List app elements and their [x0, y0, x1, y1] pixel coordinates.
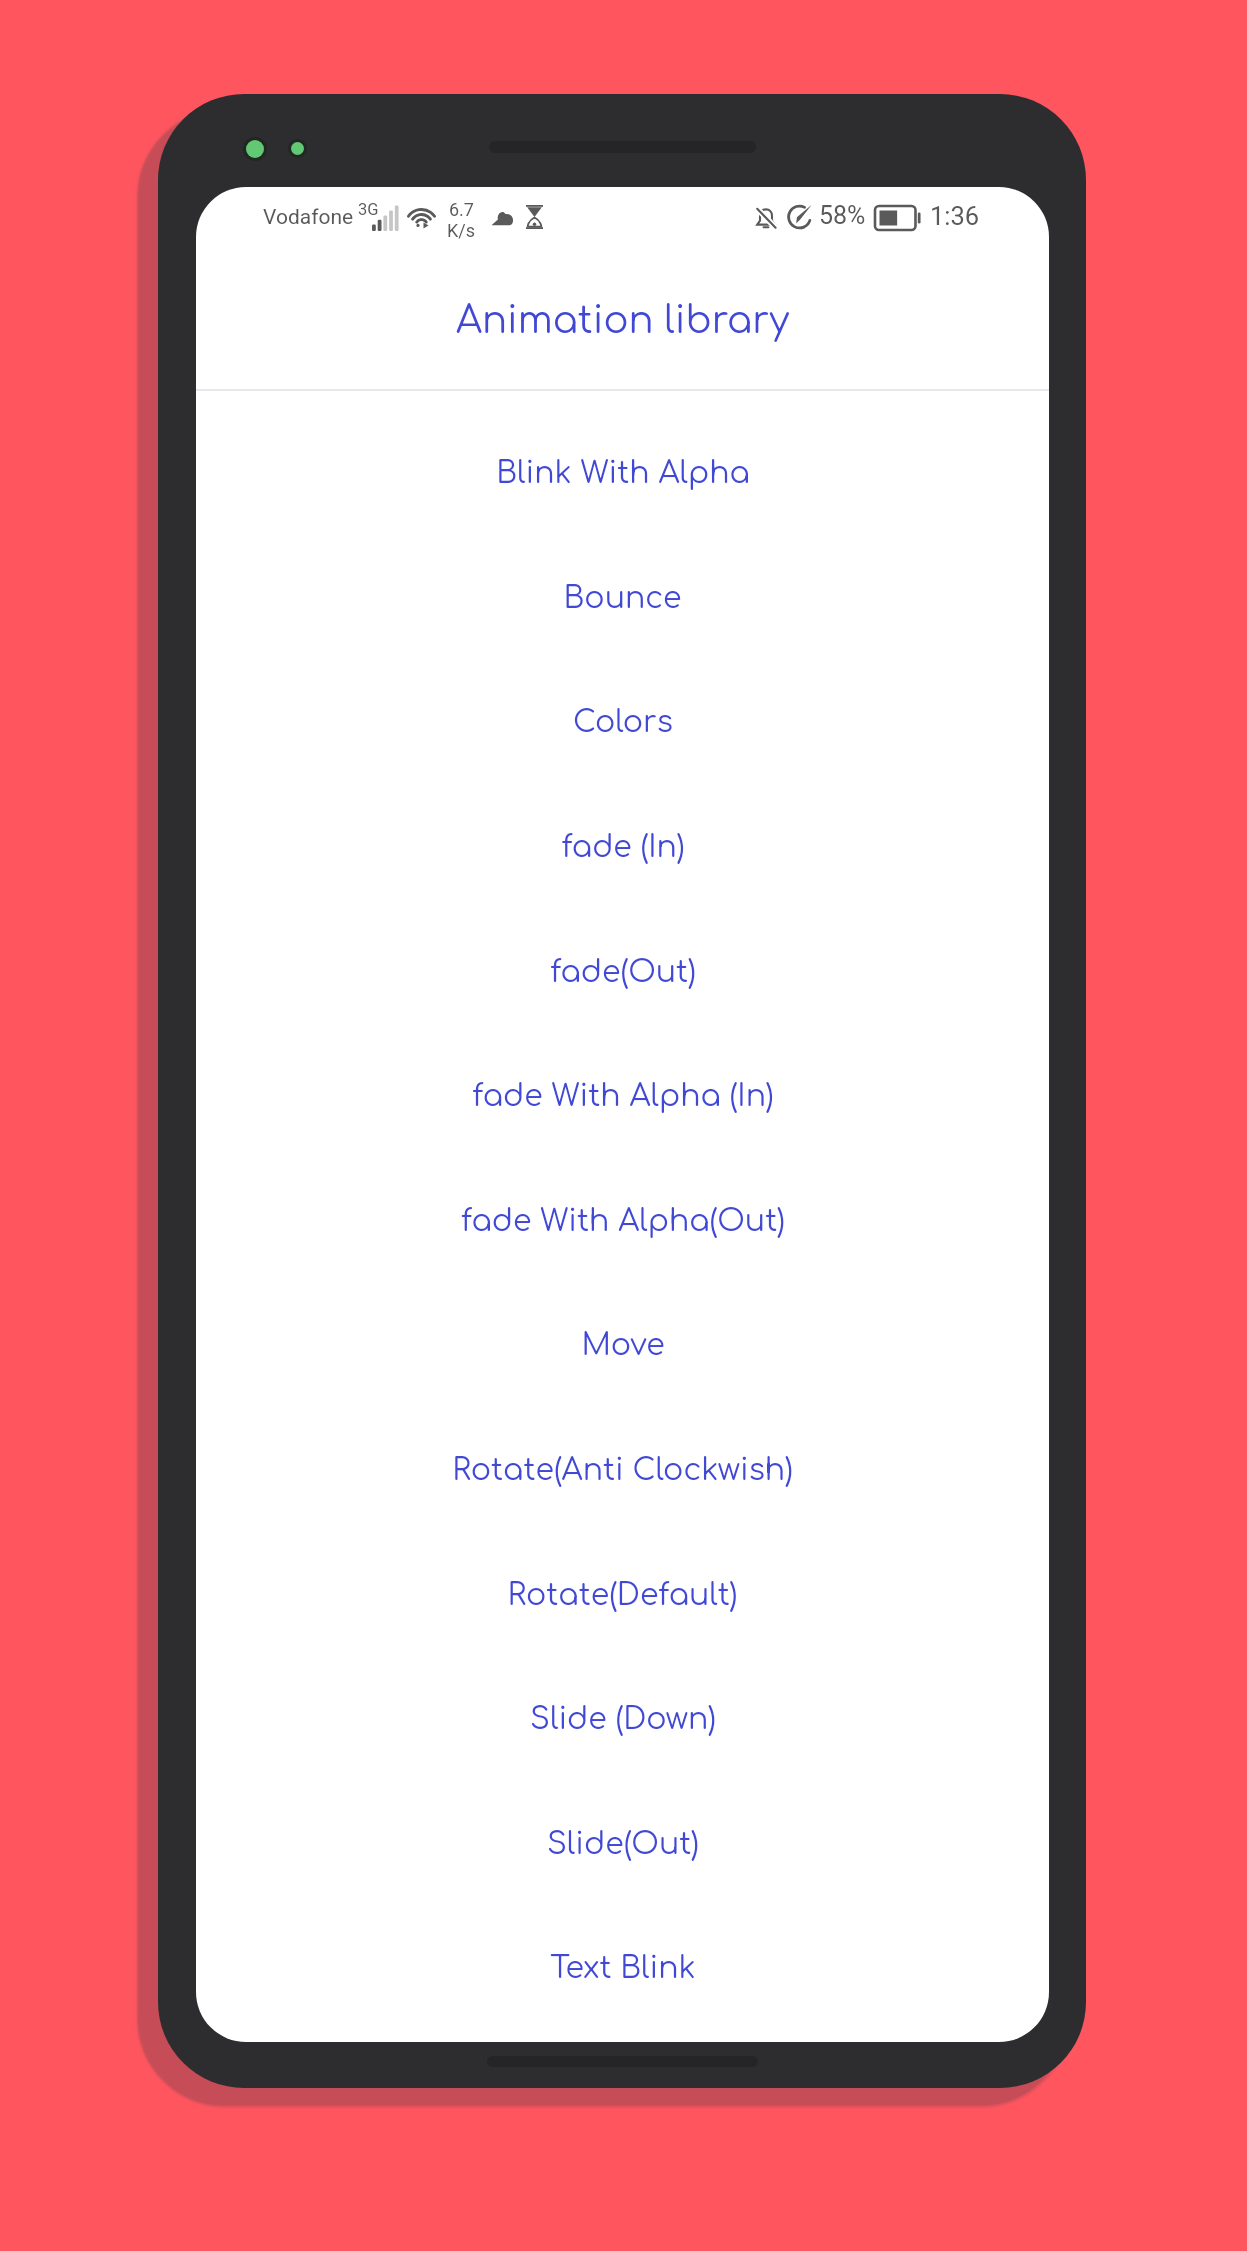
button[interactable]: Slide(Out) — [196, 1782, 1049, 1907]
staticText: Vodafone — [263, 205, 354, 230]
staticText: Rotate(Default) — [507, 1579, 738, 1612]
staticText: Move — [581, 1329, 665, 1362]
other: Wi-Fi — [407, 203, 436, 231]
button[interactable]: fade (In) — [196, 785, 1049, 910]
staticText: fade(Out) — [550, 956, 696, 989]
button[interactable]: fade With Alpha (In) — [196, 1034, 1049, 1159]
staticText: Blink With Alpha — [496, 457, 750, 490]
other: Notifications silenced — [756, 207, 776, 229]
other: Battery 58 percent — [875, 206, 921, 230]
staticText: K/s — [447, 220, 476, 241]
staticText: Slide (Down) — [530, 1703, 716, 1736]
staticText: 3G — [358, 200, 379, 219]
staticText: 58% — [819, 201, 866, 230]
other: Mobile signal strength — [372, 205, 398, 231]
button[interactable]: Blink With Alpha — [196, 411, 1049, 536]
staticText: 6.7 — [449, 199, 474, 220]
staticText: 1:36 — [930, 201, 980, 231]
button[interactable]: Colors — [196, 660, 1049, 785]
other: Cloud sync — [491, 209, 514, 226]
other: Alarm set — [526, 205, 543, 229]
staticText: fade With Alpha(Out) — [461, 1205, 785, 1238]
staticText: Bounce — [563, 582, 682, 615]
staticText: Slide(Out) — [547, 1828, 699, 1861]
button[interactable]: Move — [196, 1283, 1049, 1408]
button[interactable]: Rotate(Anti Clockwish) — [196, 1408, 1049, 1533]
staticText: Colors — [573, 706, 673, 739]
button[interactable]: Bounce — [196, 536, 1049, 661]
button[interactable]: fade With Alpha(Out) — [196, 1159, 1049, 1284]
staticText: fade With Alpha (In) — [472, 1080, 774, 1113]
staticText: fade (In) — [561, 831, 685, 864]
button[interactable]: Text Blink — [196, 1906, 1049, 2031]
button[interactable]: Slide (Down) — [196, 1657, 1049, 1782]
button[interactable]: Rotate(Default) — [196, 1533, 1049, 1658]
staticText: Animation library — [456, 300, 790, 341]
staticText: Rotate(Anti Clockwish) — [452, 1454, 793, 1487]
other: Data saver — [785, 204, 814, 230]
staticText: Text Blink — [550, 1952, 696, 1985]
button[interactable]: fade(Out) — [196, 910, 1049, 1035]
